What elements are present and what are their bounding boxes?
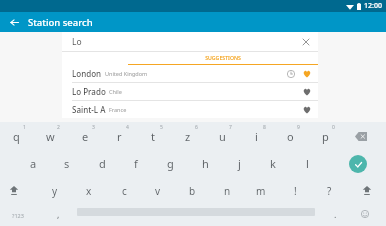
staticText: e: [82, 129, 89, 144]
staticText: 8: [263, 124, 266, 131]
button[interactable]: o: [275, 122, 305, 150]
button[interactable]: l: [292, 150, 322, 177]
staticText: c: [122, 184, 127, 198]
staticText: d: [99, 156, 106, 171]
button[interactable]: SUGGESTIONS: [128, 52, 318, 65]
staticText: ?: [327, 184, 332, 198]
staticText: k: [270, 156, 276, 171]
staticText: x: [86, 184, 92, 198]
button[interactable]: u: [207, 122, 237, 150]
button[interactable]: d: [87, 150, 117, 177]
staticText: 5: [160, 124, 163, 131]
button[interactable]: v: [143, 177, 173, 204]
button[interactable]: Backspace: [352, 129, 370, 143]
button[interactable]: h: [190, 150, 220, 177]
staticText: Lo: [72, 36, 82, 48]
button[interactable]: f: [121, 150, 151, 177]
button[interactable]: Recent: [284, 67, 298, 81]
button[interactable]: Favorite: [300, 67, 314, 81]
button[interactable]: ?123: [6, 208, 30, 222]
button[interactable]: Emoji: [358, 207, 372, 221]
staticText: a: [30, 156, 37, 171]
button[interactable]: w: [35, 122, 65, 150]
staticText: i: [255, 129, 258, 144]
button[interactable]: t: [138, 122, 168, 150]
button[interactable]: i: [241, 122, 271, 150]
button[interactable]: a: [18, 150, 48, 177]
staticText: r: [117, 129, 122, 144]
button[interactable]: q: [1, 122, 31, 150]
button[interactable]: y: [40, 177, 70, 204]
staticText: .: [334, 208, 337, 220]
button[interactable]: Favorite: [300, 103, 314, 117]
staticText: q: [13, 129, 20, 144]
button[interactable]: Search: [349, 155, 367, 173]
button[interactable]: g: [155, 150, 185, 177]
button[interactable]: ?: [314, 177, 344, 204]
button[interactable]: e: [70, 122, 100, 150]
staticText: z: [185, 129, 191, 144]
staticText: p: [322, 129, 329, 144]
staticText: u: [219, 129, 226, 144]
staticText: b: [189, 184, 196, 198]
staticText: SUGGESTIONS: [205, 54, 241, 61]
staticText: h: [202, 156, 209, 171]
staticText: Station search: [28, 16, 93, 29]
staticText: v: [155, 184, 161, 198]
staticText: n: [224, 184, 231, 198]
staticText: g: [167, 156, 174, 171]
button[interactable]: Lo: [62, 32, 318, 51]
button[interactable]: s: [52, 150, 82, 177]
staticText: ,: [57, 208, 60, 220]
button[interactable]: r: [104, 122, 134, 150]
button[interactable]: Shift: [4, 181, 24, 199]
staticText: Lo Prado: [72, 86, 106, 97]
button[interactable]: p: [310, 122, 340, 150]
staticText: 0: [332, 124, 335, 131]
button[interactable]: m: [246, 177, 276, 204]
button[interactable]: j: [224, 150, 254, 177]
staticText: 7: [229, 124, 232, 131]
staticText: 9: [297, 124, 300, 131]
button[interactable]: Shift: [357, 181, 377, 199]
staticText: m: [256, 184, 266, 198]
staticText: !: [294, 184, 297, 198]
button[interactable]: ,: [48, 206, 68, 222]
button[interactable]: x: [74, 177, 104, 204]
staticText: s: [64, 156, 70, 171]
button[interactable]: Clear: [298, 34, 314, 50]
staticText: 3: [92, 124, 95, 131]
button[interactable]: b: [177, 177, 207, 204]
staticText: 4: [126, 124, 129, 131]
staticText: London: [72, 68, 102, 79]
staticText: w: [46, 129, 55, 144]
button[interactable]: n: [212, 177, 242, 204]
staticText: 6: [195, 124, 198, 131]
staticText: l: [306, 156, 309, 171]
staticText: t: [151, 129, 155, 144]
staticText: j: [238, 156, 241, 171]
staticText: f: [134, 156, 138, 171]
staticText: Saint-L A: [72, 104, 106, 115]
button[interactable]: k: [258, 150, 288, 177]
button[interactable]: Saint-L A: [62, 101, 318, 118]
staticText: o: [287, 129, 294, 144]
button[interactable]: Back: [6, 14, 22, 30]
staticText: 12:00: [364, 1, 382, 11]
button[interactable]: Lo Prado: [62, 83, 318, 100]
button[interactable]: Favorite: [300, 85, 314, 99]
staticText: Chile: [109, 88, 122, 95]
staticText: 1: [23, 124, 26, 131]
staticText: 2: [57, 124, 60, 131]
button[interactable]: London: [62, 65, 318, 82]
button[interactable]: !: [280, 177, 310, 204]
staticText: United Kingdom: [105, 70, 148, 77]
staticText: y: [52, 184, 58, 198]
button[interactable]: .: [327, 206, 343, 222]
button[interactable]: z: [173, 122, 203, 150]
button[interactable]: c: [109, 177, 139, 204]
staticText: ?123: [12, 212, 24, 219]
staticText: France: [109, 106, 127, 113]
